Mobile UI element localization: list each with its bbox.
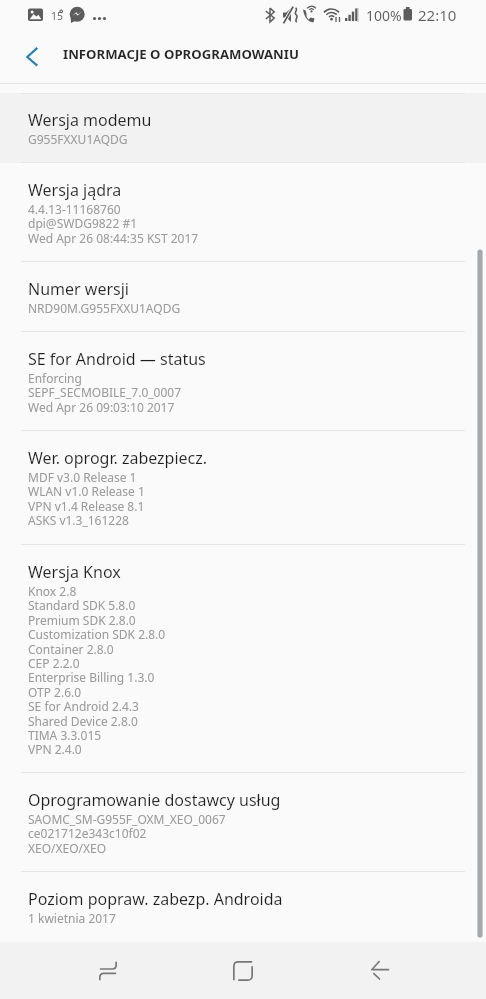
staticText: Container 2.8.0 (28, 641, 114, 657)
button[interactable]: Back (0, 30, 56, 84)
staticText: 22:10 (418, 5, 457, 25)
staticText: WLAN v1.0 Release 1 (28, 483, 145, 499)
button[interactable]: Recent apps (72, 942, 144, 999)
staticText: 4.4.13-11168760 (28, 201, 121, 217)
staticText: VPN 2.4.0 (28, 741, 82, 757)
staticText: Enterprise Billing 1.3.0 (28, 669, 155, 685)
staticText: Shared Device 2.8.0 (28, 713, 138, 729)
button[interactable]: SE for Android — status (0, 332, 486, 431)
staticText: INFORMACJE O OPROGRAMOWANIU (63, 45, 299, 63)
staticText: Standard SDK 5.8.0 (28, 597, 136, 613)
staticText: Wed Apr 26 09:03:10 2017 (28, 399, 175, 415)
staticText: ce021712e343c10f02 (28, 825, 147, 841)
staticText: XEO/XEO/XEO (28, 840, 107, 856)
staticText: Knox 2.8 (28, 583, 77, 599)
button[interactable]: Numer wersji (0, 262, 486, 332)
staticText: Numer wersji (28, 278, 129, 300)
staticText: Wersja modemu (28, 109, 152, 131)
staticText: MDF v3.0 Release 1 (28, 469, 137, 485)
staticText: SE for Android 2.4.3 (28, 698, 139, 714)
staticText: Poziom popraw. zabezp. Androida (28, 888, 283, 910)
staticText: 15 (51, 9, 64, 23)
staticText: Premium SDK 2.8.0 (28, 612, 136, 628)
staticText: SE for Android — status (28, 348, 206, 370)
button[interactable]: Back (344, 942, 416, 999)
button[interactable]: Oprogramowanie dostawcy usług (0, 773, 486, 872)
staticText: TIMA 3.3.015 (28, 727, 102, 743)
staticText: Wersja Knox (28, 561, 121, 583)
staticText: Customization SDK 2.8.0 (28, 626, 166, 642)
button[interactable]: Wersja jądra (0, 163, 486, 262)
staticText: SAOMC_SM-G955F_OXM_XEO_0067 (28, 811, 226, 827)
button[interactable]: Poziom popraw. zabezp. Androida (0, 872, 486, 942)
staticText: Wersja jądra (28, 179, 122, 201)
staticText: VPN v1.4 Release 8.1 (28, 498, 145, 514)
button[interactable]: Home (207, 942, 279, 999)
staticText: ASKS v1.3_161228 (28, 512, 129, 528)
staticText: NRD90M.G955FXXU1AQDG (28, 300, 181, 316)
button[interactable]: Wersja Knox (0, 545, 486, 774)
staticText: Wed Apr 26 08:44:35 KST 2017 (28, 230, 199, 246)
staticText: Wer. oprogr. zabezpiecz. (28, 447, 208, 469)
staticText: 1 kwietnia 2017 (28, 910, 116, 926)
button[interactable]: Wersja modemu (0, 93, 486, 163)
staticText: Enforcing (28, 370, 82, 386)
staticText: dpi@SWDG9822 #1 (28, 215, 138, 231)
staticText: G955FXXU1AQDG (28, 131, 128, 147)
button[interactable]: Wer. oprogr. zabezpiecz. (0, 431, 486, 544)
staticText: 100% (366, 6, 402, 25)
staticText: Oprogramowanie dostawcy usług (28, 789, 281, 811)
staticText: OTP 2.6.0 (28, 684, 82, 700)
staticText: CEP 2.2.0 (28, 655, 80, 671)
staticText: SEPF_SECMOBILE_7.0_0007 (28, 384, 182, 400)
